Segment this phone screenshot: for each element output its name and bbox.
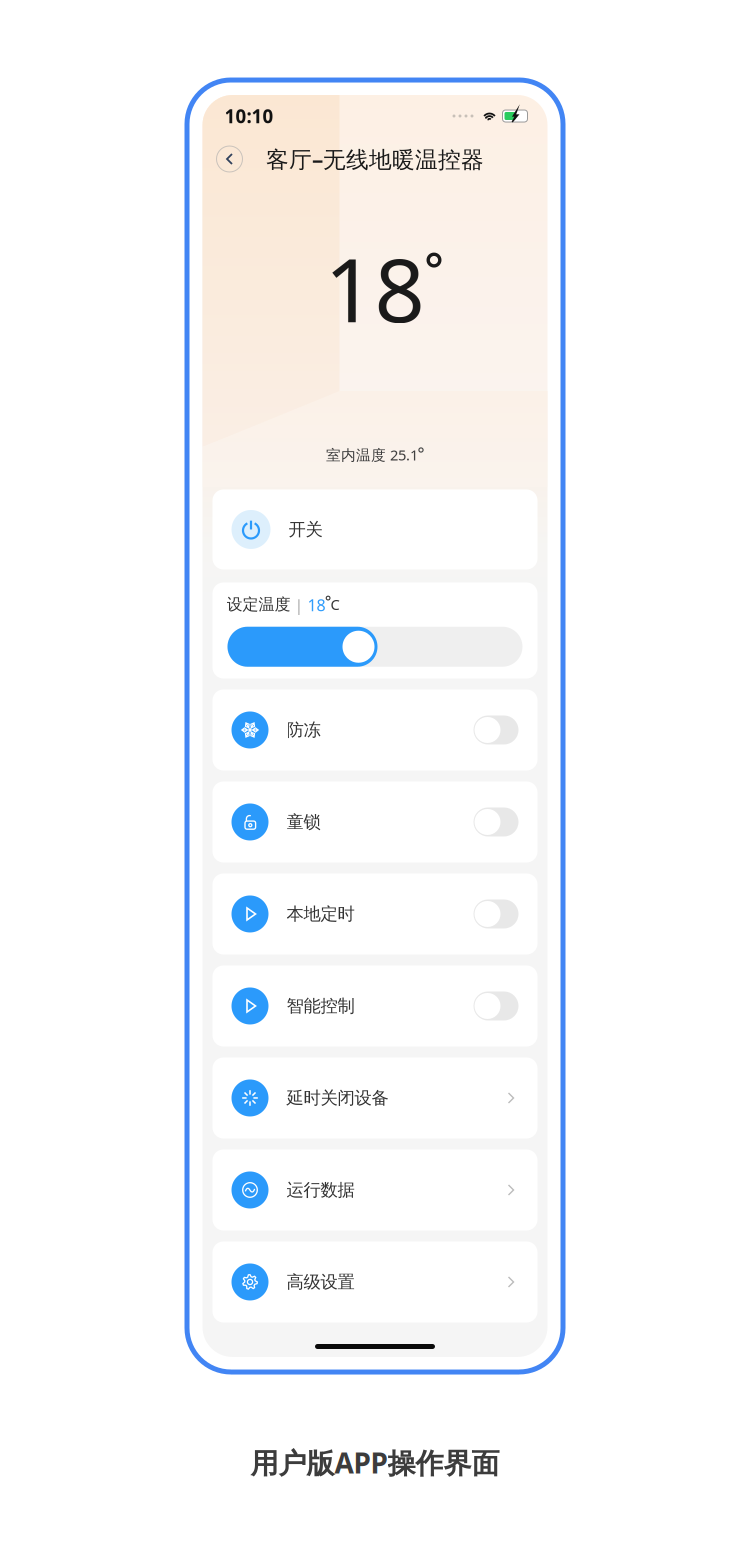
staticText: C — [330, 594, 339, 614]
staticText: 用户版APP操作界面 — [250, 1444, 499, 1481]
staticText: 18 — [324, 230, 424, 346]
button[interactable]: 运行数据 — [212, 1149, 537, 1230]
button[interactable]: 智能控制 — [212, 965, 537, 1046]
staticText: 高级设置 — [286, 1271, 354, 1293]
button[interactable]: 防冻 — [212, 689, 537, 770]
button[interactable]: 童锁 — [212, 781, 537, 862]
button[interactable]: 延时关闭设备 — [212, 1057, 537, 1138]
button[interactable]: 本地定时 — [212, 873, 537, 954]
staticText: 智能控制 — [286, 995, 354, 1017]
staticText: 室内温度 25.1 — [326, 445, 418, 464]
button[interactable]: Back — [216, 146, 242, 172]
staticText: 防冻 — [286, 719, 320, 741]
staticText: 本地定时 — [286, 903, 354, 925]
staticText: 客厅–无线地暖温控器 — [266, 144, 484, 174]
staticText: 18 — [307, 594, 325, 616]
staticText: 开关 — [288, 519, 322, 540]
staticText: 童锁 — [286, 811, 320, 833]
button[interactable]: 开关 — [212, 489, 537, 569]
staticText: 运行数据 — [286, 1179, 354, 1201]
staticText: 设定温度 — [226, 594, 290, 614]
staticText: 10:10 — [224, 104, 273, 128]
button[interactable]: 高级设置 — [212, 1241, 537, 1322]
staticText: | — [290, 594, 307, 616]
staticText: 延时关闭设备 — [286, 1087, 388, 1109]
